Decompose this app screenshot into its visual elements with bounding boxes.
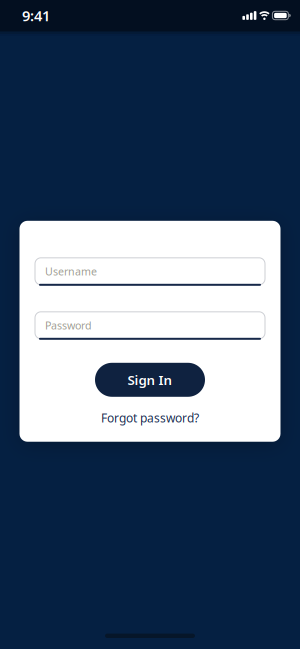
staticText: 9:41 xyxy=(22,6,50,25)
staticText: Password xyxy=(45,318,92,332)
staticText: Forgot password? xyxy=(101,410,199,426)
textField[interactable]: Username xyxy=(45,264,265,278)
staticText: Username xyxy=(45,264,97,278)
button[interactable]: Sign In xyxy=(95,363,205,397)
button[interactable]: Forgot password? xyxy=(101,410,199,426)
textField[interactable]: Password xyxy=(45,318,265,332)
staticText: Sign In xyxy=(127,371,172,389)
